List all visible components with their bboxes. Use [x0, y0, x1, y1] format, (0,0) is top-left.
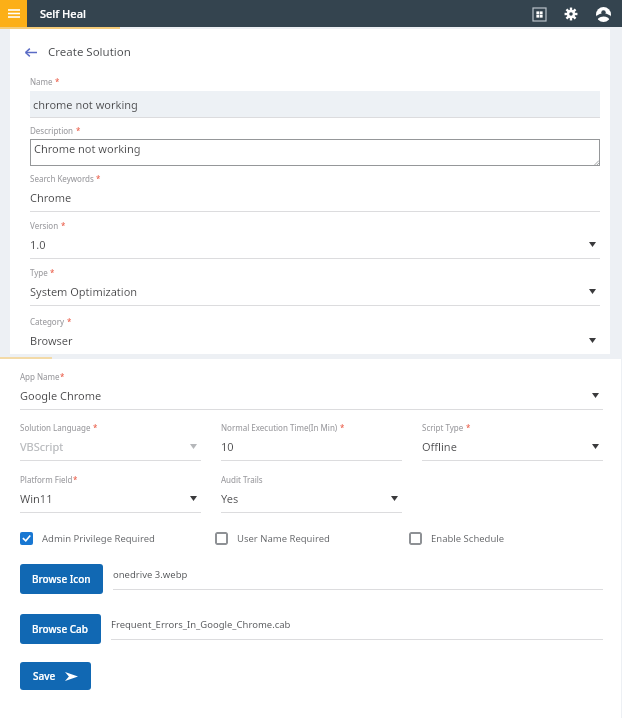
staticText: Version	[30, 220, 59, 231]
staticText: *	[65, 316, 72, 327]
staticText: Win11	[20, 491, 190, 506]
staticText: 1.0	[30, 237, 589, 252]
staticText: 10	[221, 439, 402, 454]
staticText: Google Chrome	[20, 388, 592, 403]
button[interactable]: Save	[20, 662, 91, 690]
staticText: Browse Cab	[32, 622, 89, 636]
button[interactable]: Enable Schedule	[409, 530, 505, 547]
staticText: Admin Privilege Required	[42, 532, 155, 545]
other: Back	[20, 42, 40, 62]
staticText: Chrome	[30, 190, 600, 205]
staticText: *	[338, 422, 345, 433]
button[interactable]: Platform Field	[20, 474, 201, 513]
staticText: *	[94, 173, 101, 184]
staticText: User Name Required	[237, 532, 330, 545]
staticText: *	[59, 220, 66, 231]
staticText: chrome not working	[33, 97, 138, 112]
staticText: Type	[30, 267, 48, 278]
button[interactable]: Back	[20, 40, 131, 64]
button[interactable]: User Name Required	[215, 530, 330, 547]
button[interactable]: Type	[30, 267, 600, 306]
staticText: System Optimization	[30, 284, 589, 299]
button[interactable]: Category	[30, 316, 600, 354]
button[interactable]: Toggle fullscreen	[528, 3, 550, 25]
button[interactable]: Audit Trails	[221, 474, 402, 513]
button[interactable]: Browse Cab	[20, 614, 101, 644]
staticText: Normal Execution Time(In Min)	[221, 422, 338, 433]
staticText: Self Heal	[40, 6, 86, 21]
staticText: *	[73, 474, 78, 485]
staticText: Enable Schedule	[431, 532, 505, 545]
staticText: Yes	[221, 491, 391, 506]
button[interactable]: Admin Privilege Required	[20, 530, 155, 547]
button[interactable]: Settings	[560, 3, 582, 25]
button[interactable]: chrome not working	[30, 91, 600, 118]
staticText: Script Type	[422, 422, 464, 433]
staticText: *	[48, 267, 55, 278]
staticText: Search Keywords	[30, 173, 94, 184]
staticText: Offline	[422, 439, 592, 454]
staticText: Chrome not working	[34, 141, 141, 156]
staticText: Create Solution	[48, 44, 131, 60]
button[interactable]: Search Keywords	[30, 173, 600, 212]
button[interactable]: Version	[30, 220, 600, 259]
button[interactable]: Script Type	[422, 422, 603, 461]
staticText: Save	[33, 669, 56, 683]
staticText: *	[74, 125, 81, 136]
staticText: Description	[30, 125, 74, 136]
staticText: Category	[30, 316, 65, 327]
staticText: Browse Icon	[32, 572, 91, 586]
staticText: *	[60, 371, 65, 382]
button[interactable]: Solution Language	[20, 422, 201, 461]
staticText: Platform Field	[20, 474, 73, 485]
button[interactable]: Open navigation menu	[0, 0, 27, 27]
button[interactable]: App Name	[20, 371, 603, 410]
button[interactable]: Chrome not working	[30, 139, 600, 166]
staticText: Solution Language	[20, 422, 91, 433]
staticText: *	[91, 422, 98, 433]
staticText: *	[53, 76, 60, 87]
staticText: Audit Trails	[221, 474, 263, 485]
staticText: Frequent_Errors_In_Google_Chrome.cab	[111, 618, 291, 631]
button[interactable]: Account	[592, 3, 614, 25]
button[interactable]: Normal Execution Time(In Min)	[221, 422, 402, 461]
staticText: onedrive 3.webp	[113, 568, 188, 581]
staticText: Name	[30, 76, 53, 87]
staticText: VBScript	[20, 439, 190, 454]
staticText: App Name	[20, 371, 60, 382]
button[interactable]: Browse Icon	[20, 564, 103, 594]
staticText: Browser	[30, 333, 589, 348]
staticText: *	[464, 422, 471, 433]
